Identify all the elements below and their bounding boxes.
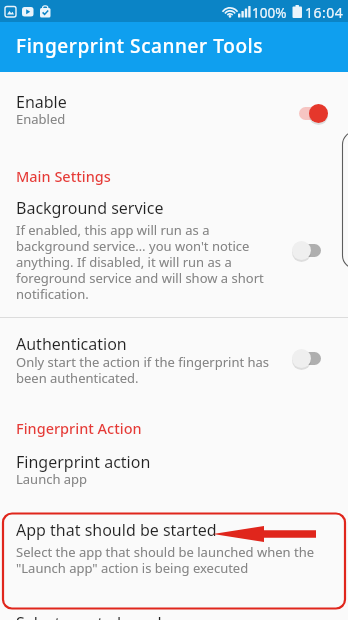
- staticText: Enabled: [16, 110, 66, 128]
- staticText: Main Settings: [16, 166, 111, 186]
- staticText: If enabled, this app will run as a backg…: [16, 221, 264, 302]
- staticText: Enable: [16, 91, 67, 113]
- staticText: Fingerprint Action: [16, 418, 142, 438]
- staticText: Fingerprint Scanner Tools: [16, 33, 264, 59]
- button[interactable]: Enable: [0, 84, 348, 134]
- staticText: Select app to launch: [16, 612, 168, 620]
- staticText: Select the app that should be launched w…: [16, 543, 315, 576]
- staticText: 100%: [252, 4, 287, 22]
- button[interactable]: [298, 103, 328, 123]
- staticText: App that should be started: [16, 519, 217, 541]
- staticText: Launch app: [16, 470, 88, 488]
- button[interactable]: App that should be started: [0, 514, 348, 608]
- staticText: 16:04: [305, 3, 344, 22]
- staticText: Only start the action if the fingerprint…: [16, 353, 270, 386]
- button[interactable]: [292, 240, 322, 260]
- staticText: Fingerprint action: [16, 451, 151, 473]
- button[interactable]: [292, 348, 322, 368]
- staticText: Background service: [16, 197, 164, 219]
- button[interactable]: Fingerprint action: [0, 446, 348, 492]
- staticText: Authentication: [16, 333, 127, 355]
- button[interactable]: Background service: [0, 192, 348, 304]
- button[interactable]: Authentication: [0, 328, 348, 390]
